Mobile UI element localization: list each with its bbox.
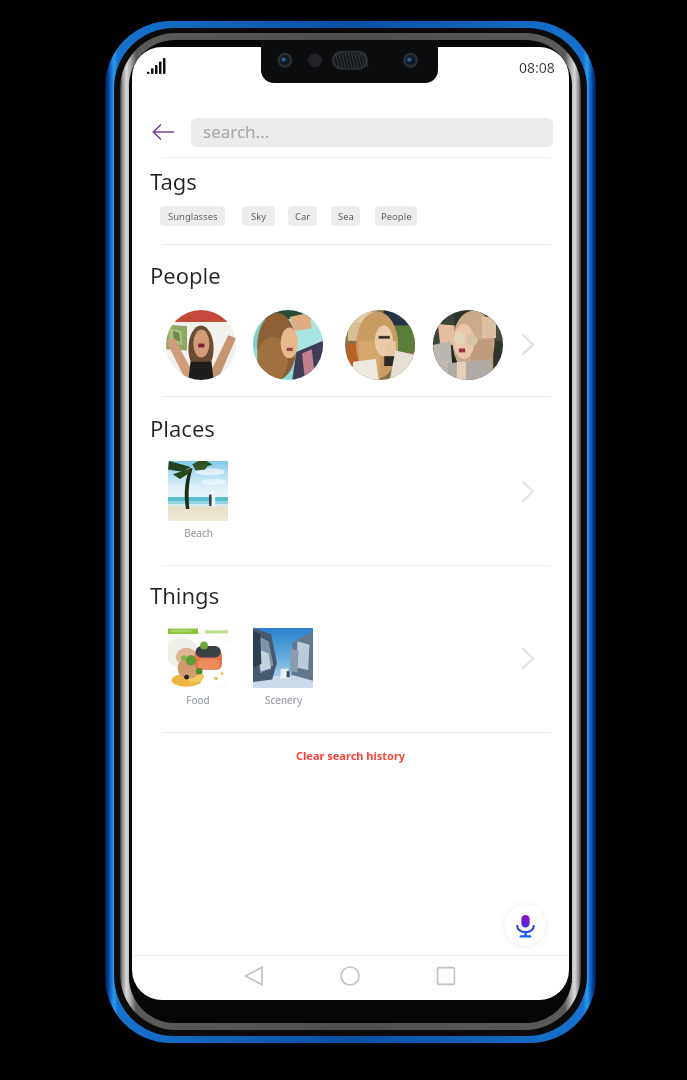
staticText: Sky — [251, 210, 267, 223]
staticText: Clear search history — [296, 748, 406, 763]
button[interactable]: Recents — [398, 954, 494, 998]
staticText: People — [381, 210, 412, 223]
staticText: Car — [295, 210, 311, 223]
button[interactable] — [166, 310, 236, 380]
button[interactable]: Sea — [331, 206, 360, 226]
staticText: Sea — [338, 210, 354, 223]
button[interactable]: Sky — [242, 206, 275, 226]
button[interactable] — [253, 310, 323, 380]
button[interactable]: Car — [288, 206, 317, 226]
staticText: search... — [203, 120, 270, 143]
staticText: People — [150, 260, 221, 290]
button[interactable]: Sunglasses — [160, 206, 225, 226]
staticText: Scenery — [265, 693, 302, 707]
button[interactable] — [433, 310, 503, 380]
button[interactable] — [345, 310, 415, 380]
staticText: Things — [150, 580, 220, 610]
button[interactable]: Home — [302, 954, 398, 998]
staticText: Tags — [150, 166, 197, 196]
button[interactable]: search... — [191, 118, 553, 147]
staticText: Places — [150, 413, 215, 443]
staticText: Beach — [184, 526, 213, 540]
button[interactable]: Back — [206, 954, 302, 998]
button[interactable]: Voice search — [497, 897, 553, 953]
staticText: Sunglasses — [168, 210, 218, 223]
button[interactable] — [253, 628, 313, 688]
staticText: Food — [186, 693, 210, 707]
button[interactable]: People — [375, 206, 417, 226]
staticText: 08:08 — [519, 58, 555, 77]
button[interactable]: Clear search history — [132, 742, 569, 768]
button[interactable]: Back — [150, 119, 176, 145]
button[interactable] — [168, 461, 228, 521]
button[interactable] — [168, 628, 228, 688]
